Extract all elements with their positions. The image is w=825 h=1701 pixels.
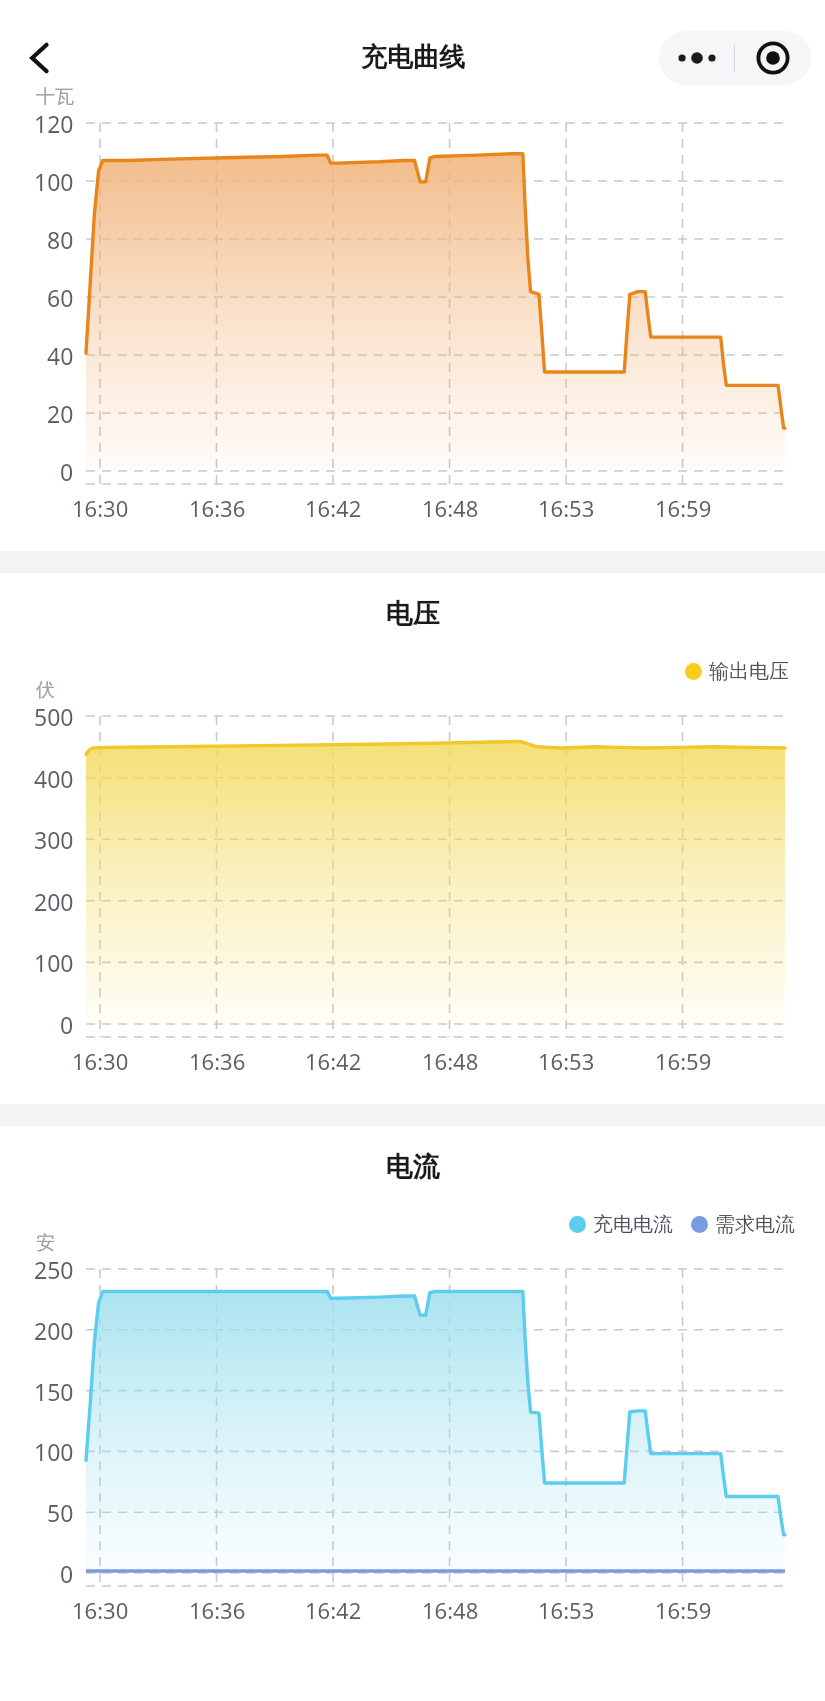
staticText: 16:36 bbox=[189, 1046, 246, 1076]
staticText: 300 bbox=[34, 824, 74, 855]
staticText: 16:53 bbox=[538, 1046, 595, 1076]
staticText: 16:42 bbox=[305, 493, 362, 523]
staticText: 十瓦 bbox=[36, 85, 74, 109]
staticText: 16:36 bbox=[189, 493, 246, 523]
staticText: 16:30 bbox=[72, 493, 129, 523]
button[interactable]: 需求电流 bbox=[691, 1212, 795, 1237]
staticText: 100 bbox=[34, 1436, 74, 1467]
staticText: 20 bbox=[47, 398, 74, 429]
staticText: 200 bbox=[34, 1315, 74, 1346]
staticText: 16:59 bbox=[655, 493, 712, 523]
staticText: 充电电流 bbox=[593, 1212, 673, 1237]
button[interactable]: More options bbox=[659, 31, 734, 85]
button[interactable]: 输出电压 bbox=[685, 659, 789, 684]
staticText: 16:48 bbox=[422, 493, 479, 523]
staticText: 16:30 bbox=[72, 1046, 129, 1076]
staticText: 100 bbox=[34, 947, 74, 978]
button[interactable]: Record bbox=[735, 31, 811, 85]
staticText: 需求电流 bbox=[715, 1212, 795, 1237]
staticText: 16:59 bbox=[655, 1595, 712, 1625]
staticText: 16:53 bbox=[538, 1595, 595, 1625]
staticText: 250 bbox=[34, 1254, 74, 1285]
staticText: 0 bbox=[60, 1558, 74, 1589]
staticText: 150 bbox=[34, 1376, 74, 1407]
staticText: 0 bbox=[60, 1009, 74, 1040]
staticText: 充电曲线 bbox=[361, 41, 465, 74]
staticText: 500 bbox=[34, 701, 74, 732]
staticText: 120 bbox=[34, 108, 74, 139]
staticText: 16:42 bbox=[305, 1595, 362, 1625]
staticText: 电流 bbox=[0, 1150, 825, 1184]
button[interactable]: Back bbox=[8, 26, 72, 90]
staticText: 安 bbox=[36, 1231, 55, 1255]
staticText: 0 bbox=[60, 456, 74, 487]
button[interactable]: 充电电流 bbox=[569, 1212, 673, 1237]
staticText: 16:53 bbox=[538, 493, 595, 523]
staticText: 100 bbox=[34, 166, 74, 197]
staticText: 输出电压 bbox=[709, 659, 789, 684]
staticText: 60 bbox=[47, 282, 74, 313]
staticText: 400 bbox=[34, 763, 74, 794]
staticText: 16:30 bbox=[72, 1595, 129, 1625]
staticText: 16:48 bbox=[422, 1595, 479, 1625]
staticText: 16:42 bbox=[305, 1046, 362, 1076]
staticText: 16:36 bbox=[189, 1595, 246, 1625]
staticText: 伏 bbox=[36, 678, 55, 702]
staticText: 80 bbox=[47, 224, 74, 255]
staticText: 40 bbox=[47, 340, 74, 371]
staticText: 200 bbox=[34, 886, 74, 917]
staticText: 16:59 bbox=[655, 1046, 712, 1076]
staticText: 50 bbox=[47, 1497, 74, 1528]
staticText: 16:48 bbox=[422, 1046, 479, 1076]
staticText: 电压 bbox=[0, 597, 825, 631]
